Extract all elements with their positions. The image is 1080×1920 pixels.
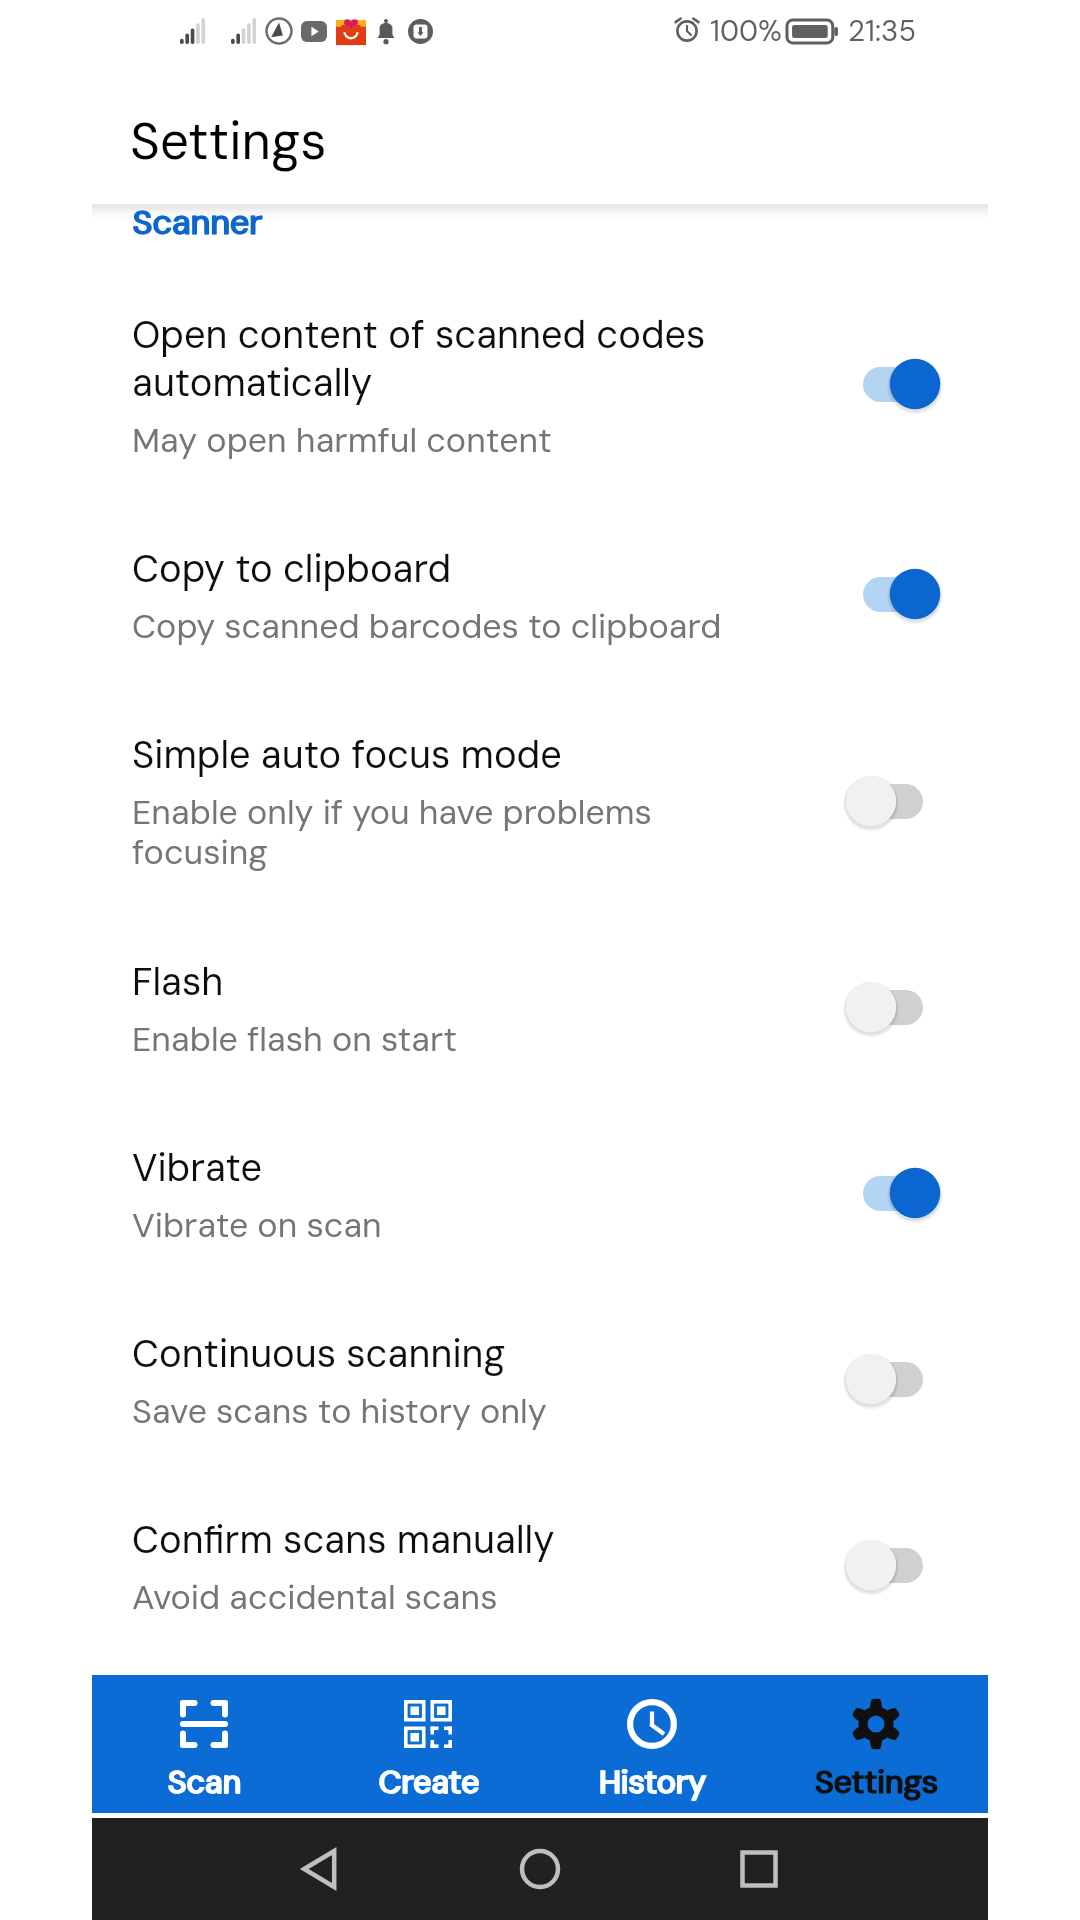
- staticText: Scan: [167, 1761, 241, 1803]
- button[interactable]: Scan: [92, 1675, 316, 1803]
- button[interactable]: Toggle on: [843, 1165, 943, 1221]
- button[interactable]: Toggle off: [843, 1351, 943, 1407]
- staticText: Scanner: [133, 200, 264, 235]
- staticText: Settings: [130, 108, 327, 174]
- button[interactable]: Toggle off: [843, 1537, 943, 1593]
- button[interactable]: Settings: [764, 1675, 988, 1803]
- staticText: Vibrate: [132, 1143, 262, 1192]
- button[interactable]: Simple auto focus mode: [92, 689, 988, 916]
- button[interactable]: Home: [510, 1839, 570, 1899]
- button[interactable]: History: [540, 1675, 764, 1803]
- staticText: Scanner: [132, 200, 263, 235]
- button[interactable]: Back: [291, 1839, 351, 1899]
- staticText: May open harmful content: [132, 418, 552, 462]
- staticText: Enable flash on start: [132, 1017, 458, 1061]
- staticText: Settings: [814, 1761, 938, 1803]
- staticText: Enable only if you have problems focusin…: [132, 790, 744, 875]
- button[interactable]: Toggle off: [843, 773, 943, 829]
- staticText: History: [599, 1761, 707, 1803]
- staticText: Create: [378, 1761, 479, 1803]
- staticText: Copy to clipboard: [132, 544, 452, 593]
- button[interactable]: Open content of scanned codes automatica…: [92, 269, 988, 503]
- staticText: 21:35: [848, 12, 917, 50]
- staticText: Save scans to history only: [132, 1389, 547, 1433]
- staticText: Continuous scanning: [132, 1329, 506, 1378]
- button[interactable]: Vibrate: [92, 1102, 988, 1288]
- button[interactable]: Toggle on: [843, 566, 943, 622]
- button[interactable]: Continuous scanning: [92, 1288, 988, 1474]
- staticText: Avoid accidental scans: [132, 1575, 498, 1619]
- staticText: Confirm scans manually: [132, 1515, 555, 1564]
- button[interactable]: Recents: [729, 1839, 789, 1899]
- staticText: Simple auto focus mode: [132, 730, 562, 779]
- button[interactable]: Toggle on: [843, 356, 943, 412]
- button[interactable]: Copy to clipboard: [92, 503, 988, 689]
- button[interactable]: Toggle off: [843, 979, 943, 1035]
- staticText: Vibrate on scan: [132, 1203, 382, 1247]
- button[interactable]: Create: [316, 1675, 540, 1803]
- staticText: Open content of scanned codes automatica…: [132, 310, 744, 407]
- staticText: Scan: [168, 1761, 242, 1803]
- staticText: History: [598, 1761, 706, 1803]
- button[interactable]: Confirm scans manually: [92, 1474, 988, 1660]
- button[interactable]: Flash: [92, 916, 988, 1102]
- staticText: Create: [379, 1761, 480, 1803]
- staticText: Settings: [815, 1761, 939, 1803]
- staticText: Copy scanned barcodes to clipboard: [132, 604, 722, 648]
- staticText: 100%: [710, 12, 782, 50]
- staticText: Flash: [132, 957, 224, 1006]
